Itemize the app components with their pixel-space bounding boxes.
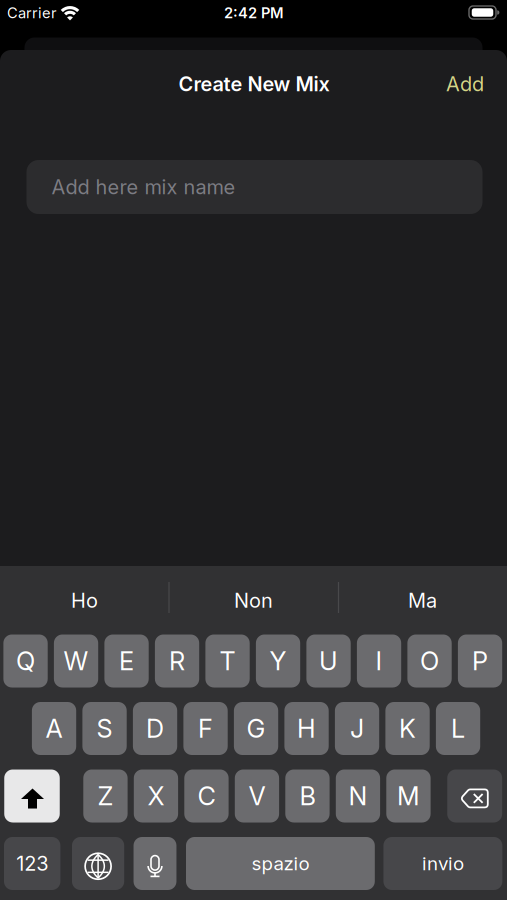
staticText: Non — [234, 589, 273, 612]
staticText: K — [399, 714, 416, 743]
staticText: V — [248, 781, 265, 811]
staticText: G — [247, 714, 266, 743]
button[interactable]: T — [205, 634, 250, 687]
button[interactable]: J — [335, 702, 379, 755]
button[interactable]: D — [133, 702, 177, 755]
button[interactable]: R — [155, 634, 199, 687]
staticText: E — [119, 646, 134, 676]
button[interactable]: C — [184, 769, 229, 822]
button[interactable]: S — [82, 702, 127, 755]
staticText: 123 — [16, 852, 48, 875]
staticText: B — [299, 781, 315, 811]
staticText: L — [451, 714, 465, 743]
button[interactable]: X — [134, 769, 178, 822]
button[interactable]: Y — [256, 634, 300, 687]
button[interactable]: spazio — [186, 837, 375, 890]
button[interactable]: Z — [83, 769, 128, 822]
staticText: R — [169, 646, 185, 676]
staticText: D — [146, 714, 164, 743]
staticText: invio — [422, 852, 464, 874]
staticText: Ma — [408, 589, 437, 612]
staticText: F — [198, 714, 213, 743]
staticText: Ho — [71, 589, 98, 612]
button[interactable]: W — [54, 634, 98, 687]
button[interactable]: Q — [3, 634, 48, 687]
staticText: Y — [270, 646, 287, 676]
staticText: H — [297, 714, 316, 743]
button[interactable]: Non — [171, 568, 335, 632]
button[interactable]: Next keyboard — [72, 837, 124, 890]
button[interactable]: F — [183, 702, 228, 755]
button[interactable]: V — [235, 769, 279, 822]
button[interactable]: N — [336, 769, 380, 822]
staticText: C — [197, 781, 215, 811]
button[interactable]: I — [357, 634, 401, 687]
staticText: T — [220, 646, 236, 676]
staticText: O — [420, 646, 439, 676]
staticText: I — [376, 646, 383, 676]
staticText: N — [348, 781, 367, 811]
staticText: Add here mix name — [51, 175, 235, 199]
staticText: J — [350, 714, 364, 743]
button[interactable]: Dictation — [134, 837, 176, 890]
button[interactable]: Ho — [2, 568, 166, 632]
button[interactable]: E — [104, 634, 149, 687]
staticText: P — [472, 646, 488, 676]
staticText: X — [147, 781, 164, 811]
staticText: Z — [97, 781, 113, 811]
staticText: W — [63, 646, 88, 676]
staticText: 2:42 PM — [224, 4, 284, 22]
button[interactable]: Add — [446, 72, 484, 96]
button[interactable]: 123 — [4, 837, 60, 890]
button[interactable]: M — [386, 769, 431, 822]
button[interactable]: K — [385, 702, 430, 755]
button[interactable]: invio — [383, 837, 502, 890]
button[interactable]: B — [285, 769, 330, 822]
button[interactable]: Ma — [340, 568, 504, 632]
staticText: M — [397, 781, 420, 811]
button[interactable]: O — [407, 634, 452, 687]
button[interactable]: Shift — [4, 769, 60, 822]
staticText: S — [97, 714, 113, 743]
button[interactable]: G — [234, 702, 278, 755]
button[interactable]: A — [32, 702, 76, 755]
button[interactable]: H — [284, 702, 329, 755]
staticText: Q — [16, 646, 35, 676]
button[interactable]: Add here mix name — [26, 160, 482, 214]
button[interactable]: L — [436, 702, 480, 755]
button[interactable]: Delete — [447, 769, 502, 822]
button[interactable]: U — [306, 634, 351, 687]
staticText: U — [319, 646, 338, 676]
button[interactable]: P — [458, 634, 502, 687]
staticText: spazio — [251, 852, 309, 874]
staticText: Add — [446, 72, 484, 96]
staticText: A — [45, 714, 62, 743]
staticText: Carrier — [7, 4, 57, 22]
staticText: Create New Mix — [178, 72, 329, 96]
